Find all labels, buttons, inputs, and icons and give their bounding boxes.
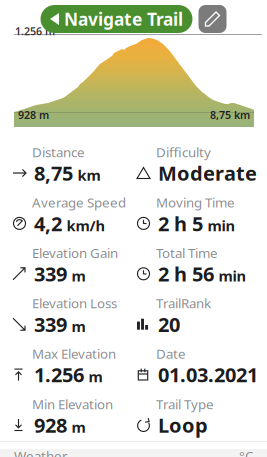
staticText: min <box>218 266 246 286</box>
staticText: 1.256 <box>34 361 84 388</box>
staticText: 8,75 <box>34 160 73 186</box>
staticText: Moderate <box>158 160 257 186</box>
staticText: Max Elevation <box>32 345 116 362</box>
staticText: km/h <box>66 216 105 235</box>
staticText: Moving Time <box>156 193 235 211</box>
staticText: Difficulty <box>156 143 211 161</box>
staticText: 20 <box>158 311 180 337</box>
staticText: Navigate Trail <box>64 7 183 30</box>
staticText: Date <box>156 345 186 362</box>
staticText: min <box>207 216 235 235</box>
staticText: Loop <box>158 412 208 438</box>
staticText: Distance <box>32 143 85 161</box>
button[interactable]: Edit <box>198 5 226 33</box>
staticText: 2 h 56 <box>158 260 214 287</box>
staticText: 339 <box>34 311 67 337</box>
staticText: Total Time <box>156 244 218 262</box>
staticText: 01.03.2021 <box>158 361 258 388</box>
staticText: °C <box>239 447 253 457</box>
staticText: 2 h 5 <box>158 210 203 237</box>
staticText: 8,75 km <box>210 108 250 122</box>
staticText: Weather <box>14 447 68 457</box>
staticText: TrailRank <box>156 294 211 312</box>
staticText: m <box>71 417 85 437</box>
staticText: Elevation Loss <box>32 294 117 312</box>
staticText: m <box>71 316 85 336</box>
staticText: 1.256 m <box>15 24 55 38</box>
staticText: Elevation Gain <box>32 244 118 262</box>
staticText: 339 <box>34 260 67 287</box>
button[interactable]: Navigate Trail <box>40 5 192 33</box>
staticText: m <box>71 266 85 286</box>
staticText: 928 <box>34 412 67 438</box>
staticText: m <box>88 367 102 386</box>
staticText: 4,2 <box>34 210 62 237</box>
staticText: 928 m <box>18 108 49 122</box>
staticText: Trail Type <box>156 395 214 413</box>
staticText: Average Speed <box>32 193 126 211</box>
staticText: Min Elevation <box>32 395 113 413</box>
staticText: km <box>77 165 100 185</box>
